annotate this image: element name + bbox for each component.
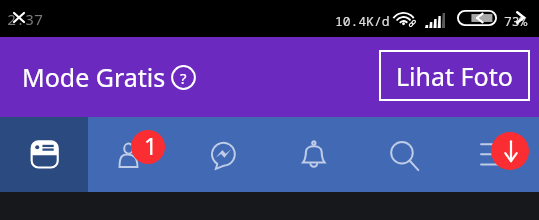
staticText: 2.37: [7, 9, 44, 29]
button[interactable]: Lihat Foto: [379, 50, 530, 101]
staticText: 10.4K/d: [335, 12, 390, 30]
staticText: ?: [180, 68, 187, 88]
button[interactable]: Menu: [449, 117, 539, 192]
button[interactable]: Notifications: [269, 117, 359, 192]
staticText: 73%: [504, 12, 528, 30]
button[interactable]: Download: [491, 132, 529, 170]
staticText: Lihat Foto: [396, 59, 513, 93]
button[interactable]: Search: [359, 117, 449, 192]
staticText: 1: [144, 130, 158, 161]
button[interactable]: Help: [171, 65, 196, 90]
button[interactable]: News Feed: [0, 117, 89, 192]
staticText: Mode Gratis: [22, 60, 166, 94]
button[interactable]: 1 new friend request: [131, 130, 165, 164]
button[interactable]: Friends, 1 new: [89, 117, 179, 192]
button[interactable]: Messenger: [179, 117, 269, 192]
